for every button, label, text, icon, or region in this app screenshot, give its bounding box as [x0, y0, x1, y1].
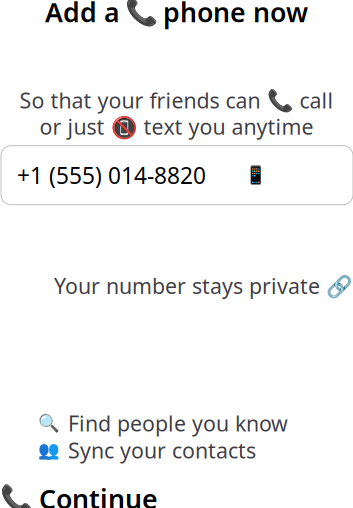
- staticText: 📞: [125, 0, 158, 27]
- staticText: 👥: [38, 440, 60, 460]
- staticText: Add a: [45, 0, 120, 30]
- staticText: 🔍: [38, 413, 60, 433]
- staticText: So that your friends can 📞 call: [19, 86, 333, 114]
- button[interactable]: 📞: [0, 487, 353, 508]
- staticText: Your number stays private 🔗: [54, 271, 353, 300]
- staticText: Continue: [39, 481, 158, 508]
- staticText: Find people you know: [68, 409, 288, 437]
- button[interactable]: Your number stays private 🔗: [0, 274, 353, 298]
- staticText: phone now: [163, 0, 308, 30]
- staticText: or just 📵 text you anytime: [39, 112, 313, 141]
- button[interactable]: 🔍: [0, 410, 353, 437]
- staticText: 📞: [0, 483, 33, 508]
- staticText: Sync your contacts: [68, 436, 256, 464]
- staticText: +1 (555) 014-8820: [17, 160, 206, 190]
- staticText: 📱: [245, 165, 267, 185]
- button[interactable]: 👥: [0, 437, 353, 464]
- button[interactable]: +1 (555) 014-8820: [0, 146, 353, 205]
